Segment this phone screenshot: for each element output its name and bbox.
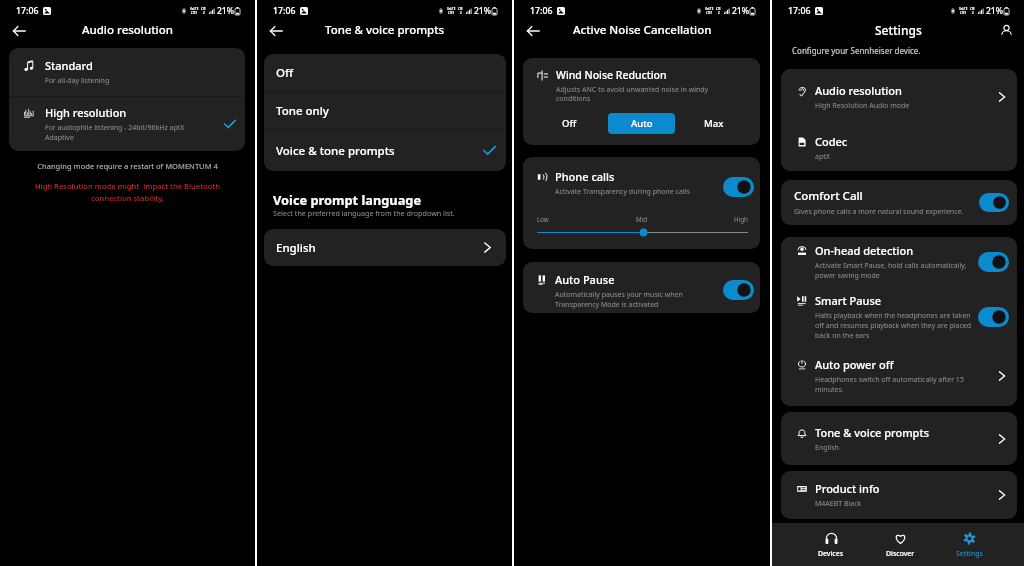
staticText: 2 [718,11,720,15]
staticText: 21% [986,5,1003,17]
button[interactable]: Auto Pause [523,262,760,313]
button[interactable]: Toggle [978,307,1009,327]
button[interactable]: English [264,229,506,266]
staticText: LTE1 [706,11,713,15]
button[interactable]: Auto [608,113,675,134]
button[interactable]: Tone & voice prompts [781,412,1017,465]
staticText: 17:06 [530,5,553,17]
staticText: Activate Transparency during phone calls [555,187,690,197]
button[interactable]: Comfort Call [781,180,1017,225]
button[interactable]: Back [521,19,544,42]
staticText: Codec [815,134,848,149]
staticText: Discover [886,549,915,558]
staticText: Product info [815,481,880,496]
staticText: Activate Smart Pause, hold calls automat… [815,261,978,281]
button[interactable]: Settings [935,523,1004,566]
staticText: Select the preferred language from the d… [273,208,455,218]
staticText: LTE1 [960,11,967,15]
staticText: Tone only [276,103,497,119]
button[interactable]: Off [546,113,593,134]
staticText: For audiophile listening - 24bit/96kHz a… [45,123,198,143]
staticText: Voice & tone prompts [276,143,482,159]
button[interactable]: Tone & voice prompts [781,412,1017,465]
staticText: Tone & voice prompts [325,22,445,38]
staticText: 17:06 [16,5,39,17]
staticText: aptX [815,152,830,162]
staticText: Mid [636,215,648,223]
button[interactable]: Audio resolution [781,69,1017,125]
staticText: For all-day listening [45,76,110,86]
button[interactable]: Back [264,19,287,42]
staticText: Auto [631,117,653,130]
staticText: 17:06 [273,5,296,17]
staticText: 2 [203,11,205,15]
button[interactable]: Standard [9,48,245,96]
staticText: 2 [460,11,462,15]
button[interactable]: Max [690,113,737,134]
button[interactable]: Product info [781,471,1017,519]
button[interactable]: Account [996,20,1016,40]
staticText: English [276,240,479,256]
staticText: M4AEBT Black [815,499,862,509]
staticText: LTE [716,7,721,11]
staticText: English [815,443,839,453]
staticText: Voice prompt language [273,191,422,208]
staticText: Headphones switch off automatically afte… [815,375,972,395]
button[interactable]: Tone only [264,92,506,129]
staticText: VoLTE [190,7,199,11]
button[interactable]: Back [7,19,30,42]
staticText: Low [537,215,549,223]
button[interactable]: On-head detection [781,237,1017,287]
staticText: Audio resolution [815,83,902,98]
button[interactable]: Off [264,54,506,91]
staticText: Auto Pause [555,272,615,287]
staticText: 2 [972,11,974,15]
button[interactable]: Discover [866,523,935,566]
staticText: VoLTE [959,7,968,11]
staticText: Halts playback when the headphones are t… [815,311,978,341]
staticText: LTE1 [191,11,198,15]
button[interactable]: High resolution [9,97,245,151]
staticText: High Resolution Audio mode [815,101,910,111]
button[interactable]: Codec [781,125,1017,171]
staticText: Off [562,117,577,130]
button[interactable]: Auto power off [781,346,1017,406]
button[interactable]: Toggle [723,177,754,197]
staticText: High [734,215,748,223]
staticText: Changing mode require a restart of MOMEN… [6,161,249,171]
button[interactable]: Product info [781,471,1017,519]
button[interactable]: Toggle [978,252,1009,272]
staticText: Auto power off [815,357,894,372]
staticText: Comfort Call [794,188,863,204]
staticText: 21% [474,5,491,17]
staticText: Max [704,117,724,130]
button[interactable]: Toggle [979,193,1009,212]
button[interactable]: Toggle [723,280,754,300]
staticText: Tone & voice prompts [815,425,930,440]
staticText: 21% [217,5,234,17]
button[interactable]: Devices [796,523,866,566]
staticText: Adjusts ANC to avoid unwanted noise in w… [556,85,724,103]
staticText: Gives phone calls a more natural sound e… [794,207,964,217]
staticText: Configure your Sennheiser device. [792,45,921,56]
button[interactable]: Smart Pause [781,287,1017,346]
staticText: Off [276,65,497,81]
staticText: 17:06 [788,5,811,17]
staticText: VoLTE [447,7,456,11]
staticText: Phone calls [555,169,615,184]
staticText: High resolution [45,105,127,120]
staticText: Wind Noise Reduction [556,68,667,82]
staticText: Smart Pause [815,293,882,308]
staticText: High Resolution mode might impact the Bl… [24,181,231,203]
staticText: VoLTE [705,7,714,11]
staticText: LTE1 [448,11,455,15]
staticText: Devices [818,549,844,558]
staticText: Audio resolution [82,22,173,38]
staticText: 21% [732,5,749,17]
staticText: Active Noise Cancellation [573,22,712,38]
staticText: LTE [201,7,206,11]
staticText: Standard [45,58,93,73]
staticText: LTE [458,7,463,11]
staticText: LTE [970,7,975,11]
button[interactable]: Voice & tone prompts [264,130,506,171]
